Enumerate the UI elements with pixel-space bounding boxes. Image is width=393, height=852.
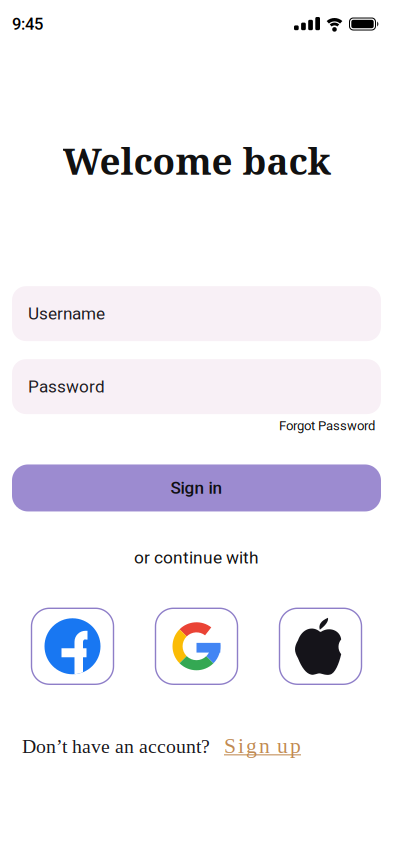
staticText: 9:45 (12, 14, 43, 34)
button[interactable]: Continue with Google (155, 608, 237, 684)
staticText: Don’t have an account? (22, 735, 210, 757)
staticText: Welcome back (62, 135, 330, 186)
button[interactable]: Continue with Apple (279, 608, 361, 684)
staticText: Sign in (170, 478, 222, 498)
staticText: or continue with (134, 547, 259, 568)
button[interactable]: Forgot Password (279, 418, 375, 433)
staticText: Forgot Password (279, 418, 375, 433)
staticText: Username (28, 304, 105, 324)
button[interactable]: Password (12, 359, 381, 414)
button[interactable]: Continue with Facebook (31, 608, 113, 684)
button[interactable]: S i g n u p (224, 734, 301, 758)
staticText: S i g n u p (224, 734, 301, 758)
button[interactable]: Username (12, 286, 381, 341)
button[interactable]: Sign in (12, 464, 381, 511)
staticText: Password (28, 377, 105, 397)
